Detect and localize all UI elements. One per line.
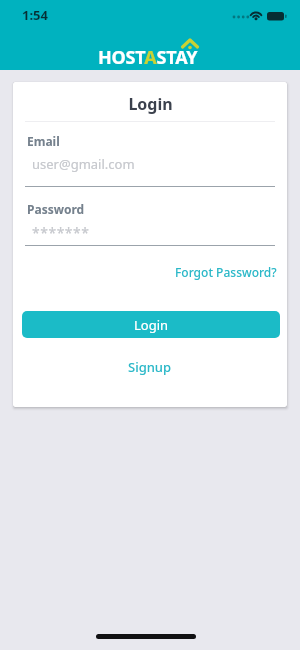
button[interactable]: ******* (25, 218, 275, 246)
staticText: Login (134, 316, 169, 334)
staticText: HOSTASTAY (98, 45, 198, 70)
staticText: Signup (128, 358, 172, 376)
staticText: Email (27, 133, 60, 149)
button[interactable]: Forgot Password? (173, 262, 277, 282)
button[interactable]: Login (22, 311, 280, 338)
staticText: Login (128, 93, 173, 115)
staticText: ******* (32, 223, 90, 242)
staticText: Password (27, 201, 85, 217)
staticText: user@gmail.com (32, 155, 135, 173)
staticText: Forgot Password? (175, 264, 277, 280)
button[interactable]: Signup (122, 352, 178, 382)
staticText: 1:54 (22, 6, 48, 24)
button[interactable]: user@gmail.com (25, 150, 275, 187)
